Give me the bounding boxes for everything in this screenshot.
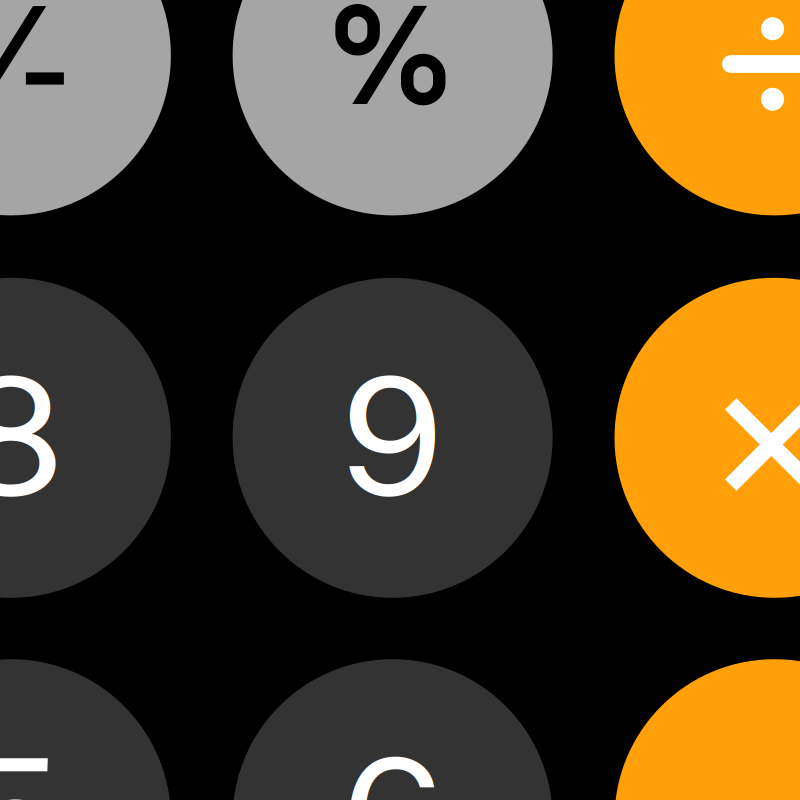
staticText: 6 xyxy=(342,722,443,800)
button[interactable]: Divide xyxy=(614,0,800,215)
staticText: 8 xyxy=(0,340,63,531)
button[interactable]: Plus minus xyxy=(0,0,171,215)
button[interactable]: 9 xyxy=(233,278,553,598)
button[interactable]: Minus xyxy=(614,659,800,800)
button[interactable]: 6 xyxy=(233,659,553,800)
staticText: 9 xyxy=(341,340,443,531)
button[interactable]: Percent xyxy=(233,0,553,215)
button[interactable]: Multiply xyxy=(614,278,800,598)
button[interactable]: 5 xyxy=(0,659,171,800)
button[interactable]: 8 xyxy=(0,278,171,598)
staticText: 5 xyxy=(0,722,63,800)
